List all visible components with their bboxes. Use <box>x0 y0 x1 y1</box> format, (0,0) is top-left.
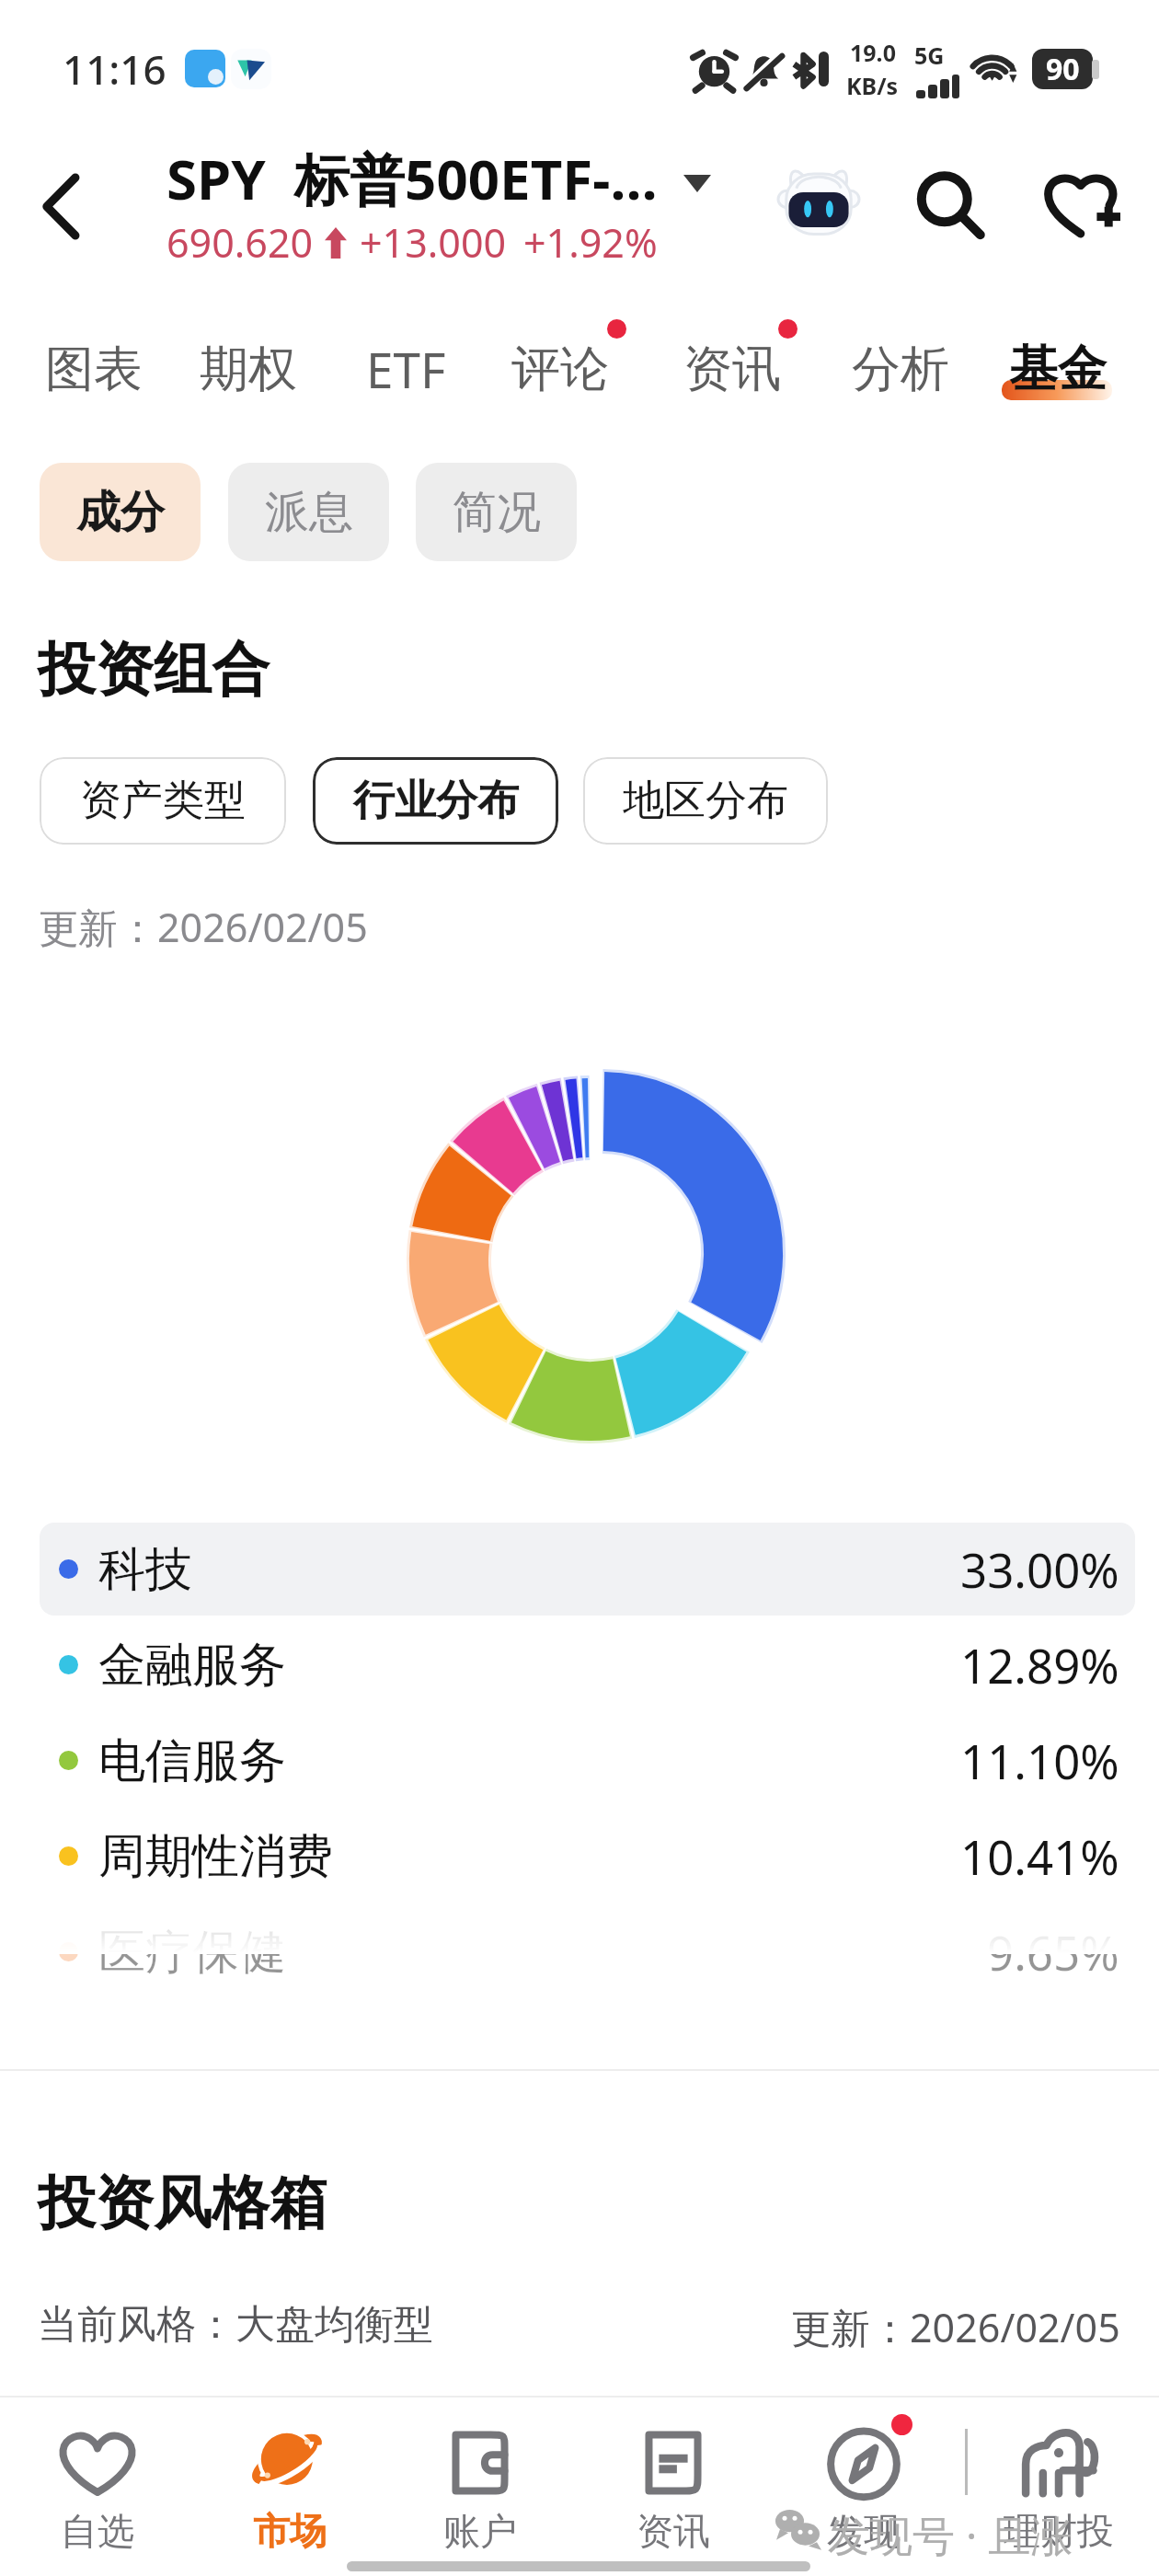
button[interactable]: 评论 <box>483 316 637 426</box>
button[interactable]: 地区分布 <box>583 757 828 845</box>
button[interactable]: 发现 <box>781 2416 947 2559</box>
staticText: 期权 <box>200 339 297 400</box>
button[interactable]: Add to watchlist <box>1027 158 1141 250</box>
staticText: 医疗保健 <box>98 1923 286 1982</box>
staticText: 派息 <box>265 485 353 540</box>
staticText: 资讯 <box>683 339 781 400</box>
button[interactable]: 图表 <box>17 316 171 426</box>
button[interactable]: 派息 <box>228 463 389 561</box>
staticText: 33.00% <box>960 1537 1119 1601</box>
button[interactable]: 金融服务 <box>40 1618 1135 1711</box>
staticText: 评论 <box>511 339 609 400</box>
staticText: 电信服务 <box>98 1731 286 1790</box>
button[interactable]: 资产类型 <box>40 757 286 845</box>
staticText: 资讯 <box>637 2508 710 2554</box>
staticText: 金融服务 <box>98 1636 286 1695</box>
staticText: +1.92% <box>523 215 658 270</box>
staticText: 更新：2026/02/05 <box>791 2300 1120 2354</box>
button[interactable]: 电信服务 <box>40 1714 1135 1807</box>
staticText: +13.000 <box>360 215 507 270</box>
staticText: 投资风格箱 <box>38 2167 327 2239</box>
button[interactable]: 分析 <box>823 316 978 426</box>
staticText: 周期性消费 <box>98 1827 333 1886</box>
button[interactable]: 资讯 <box>591 2416 756 2559</box>
staticText: 地区分布 <box>623 775 788 827</box>
staticText: 19.0 <box>850 37 896 68</box>
button[interactable]: 理财投 <box>976 2416 1142 2559</box>
staticText: 11.10% <box>960 1729 1119 1792</box>
staticText: 9.65% <box>987 1920 1119 1984</box>
staticText: 更新：2026/02/05 <box>39 900 368 954</box>
staticText: 10.41% <box>960 1824 1119 1888</box>
button[interactable]: 期权 <box>171 316 326 426</box>
staticText: 12.89% <box>960 1633 1119 1696</box>
staticText: 发现 <box>827 2508 901 2554</box>
staticText: 发现号 · 且涨 <box>828 2506 1073 2564</box>
staticText: 11:16 <box>63 41 166 97</box>
staticText: 5G <box>914 40 945 71</box>
button[interactable]: Back <box>7 147 114 265</box>
staticText: 基金 <box>1009 339 1107 400</box>
staticText: SPY 标普500ETF-… <box>166 141 658 216</box>
staticText: 简况 <box>453 485 541 540</box>
button[interactable]: 成分 <box>40 463 201 561</box>
staticText: KB/s <box>846 70 899 101</box>
button[interactable]: 科技 <box>40 1523 1135 1616</box>
button[interactable]: 简况 <box>416 463 577 561</box>
button[interactable]: 医疗保健 <box>40 1905 1135 1998</box>
staticText: 当前风格：大盘均衡型 <box>38 2300 433 2350</box>
staticText: 分析 <box>852 339 949 400</box>
button[interactable]: 基金 <box>981 316 1135 426</box>
button[interactable]: Search <box>900 160 1001 252</box>
staticText: 自选 <box>61 2508 134 2554</box>
staticText: 投资组合 <box>38 633 270 706</box>
button[interactable]: 周期性消费 <box>40 1810 1135 1903</box>
button[interactable]: 市场 <box>207 2416 373 2559</box>
staticText: 账户 <box>443 2508 517 2554</box>
staticText: 资产类型 <box>80 775 246 827</box>
button[interactable]: 资讯 <box>655 316 809 426</box>
button[interactable]: AI assistant <box>765 155 872 247</box>
staticText: 科技 <box>98 1540 192 1599</box>
button[interactable]: 账户 <box>397 2416 563 2559</box>
staticText: 690.620 <box>166 215 314 270</box>
button[interactable]: 行业分布 <box>313 757 558 845</box>
staticText: 行业分布 <box>353 775 519 827</box>
staticText: 理财投 <box>1004 2508 1114 2554</box>
staticText: ETF <box>366 336 446 402</box>
staticText: 90 <box>1046 49 1080 89</box>
button[interactable]: 自选 <box>15 2416 180 2559</box>
staticText: 市场 <box>253 2508 327 2554</box>
button[interactable]: ETF <box>328 316 483 426</box>
staticText: 成分 <box>76 485 165 540</box>
staticText: 图表 <box>45 339 143 400</box>
button[interactable]: SPY 标普500ETF-… <box>166 141 711 216</box>
